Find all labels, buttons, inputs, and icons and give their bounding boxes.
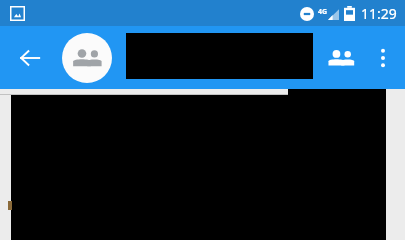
button[interactable]: More options <box>363 38 403 78</box>
button[interactable]: People <box>319 36 363 80</box>
button[interactable]: Conversation avatar <box>62 33 112 83</box>
staticText: 4G <box>318 7 328 17</box>
button[interactable]: Navigate up <box>8 36 52 80</box>
staticText: 11:29 <box>361 4 397 23</box>
